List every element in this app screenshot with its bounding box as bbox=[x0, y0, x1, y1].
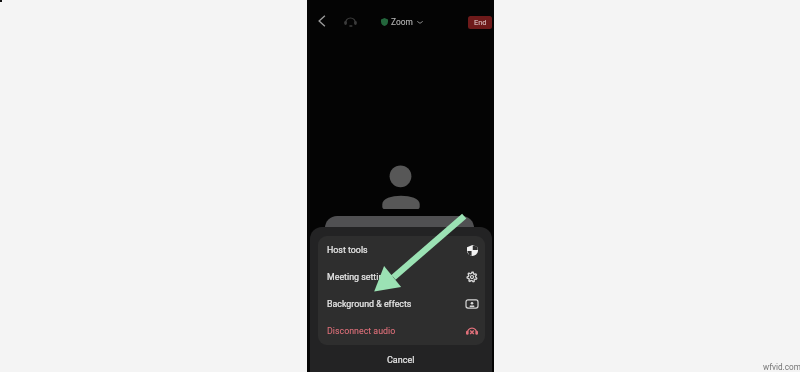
button[interactable]: End bbox=[468, 16, 492, 29]
staticText: wfvid.com bbox=[763, 362, 800, 372]
button[interactable]: Audio settings bbox=[341, 12, 359, 30]
button[interactable]: Back bbox=[313, 12, 331, 30]
staticText: Host tools bbox=[327, 245, 368, 255]
staticText: Disconnect audio bbox=[327, 326, 396, 336]
staticText: Cancel bbox=[387, 355, 415, 366]
staticText: End bbox=[474, 18, 487, 27]
staticText: Background & effects bbox=[327, 299, 412, 309]
button[interactable]: Meeting settings bbox=[318, 263, 485, 290]
staticText: Zoom bbox=[391, 17, 413, 27]
button[interactable]: Host tools bbox=[318, 236, 485, 263]
button[interactable]: Zoom bbox=[381, 13, 423, 30]
button[interactable]: Background & effects bbox=[318, 290, 485, 317]
staticText: Meeting settings bbox=[327, 272, 393, 282]
button[interactable]: Disconnect audio bbox=[318, 317, 485, 344]
button[interactable]: Cancel bbox=[310, 347, 492, 372]
